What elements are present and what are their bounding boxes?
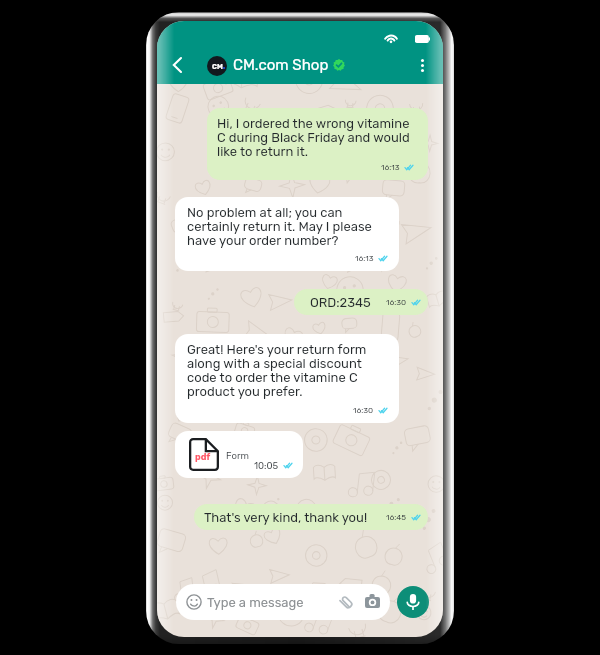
button[interactable]: Voice message bbox=[397, 586, 429, 618]
staticText: No problem at all; you can certainly ret… bbox=[187, 205, 372, 248]
staticText: Great! Here's your return form along wit… bbox=[187, 342, 367, 399]
staticText: 16:13 bbox=[355, 254, 374, 263]
staticText: Form bbox=[226, 450, 249, 461]
button[interactable]: More options bbox=[409, 52, 436, 79]
button[interactable]: ORD:2345 bbox=[294, 289, 428, 315]
staticText: 16:13 bbox=[381, 163, 400, 172]
staticText: 16:45 bbox=[386, 513, 407, 522]
staticText: CM.com Shop bbox=[233, 56, 329, 74]
staticText: 10:05 bbox=[254, 460, 279, 471]
button[interactable]: pdf bbox=[175, 431, 303, 478]
staticText: Type a message bbox=[207, 595, 304, 610]
button[interactable]: Type a message bbox=[176, 584, 390, 620]
button[interactable]: Great! Here's your return form along wit… bbox=[175, 334, 399, 423]
button[interactable]: No problem at all; you can certainly ret… bbox=[175, 197, 399, 271]
staticText: Hi, I ordered the wrong vitamine C durin… bbox=[217, 116, 410, 159]
staticText: CM bbox=[212, 62, 223, 70]
other: Camera bbox=[365, 594, 380, 608]
staticText: 16:30 bbox=[353, 406, 374, 415]
other: Attach bbox=[339, 595, 354, 610]
staticText: ORD:2345 bbox=[310, 295, 371, 310]
button[interactable]: Hi, I ordered the wrong vitamine C durin… bbox=[207, 108, 428, 180]
button[interactable]: Back bbox=[164, 52, 190, 78]
staticText: That's very kind, thank you! bbox=[204, 510, 368, 525]
button[interactable]: That's very kind, thank you! bbox=[194, 504, 428, 530]
staticText: pdf bbox=[195, 452, 211, 463]
staticText: 16:30 bbox=[386, 298, 407, 307]
